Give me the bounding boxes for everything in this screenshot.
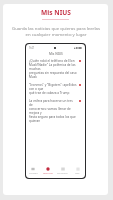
staticText: Portada <box>29 172 38 175</box>
staticText: Mis NIUS <box>43 172 53 175</box>
button[interactable]: Portada <box>26 164 40 178</box>
staticText: "Ironeros" y "Bigoters": apellidos con o… <box>29 83 77 95</box>
staticText: Más <box>75 172 80 175</box>
button[interactable]: ¿Quién robó el teléfono de Elon Musk?Nad… <box>26 57 85 81</box>
staticText: Mis NIUS <box>49 52 63 56</box>
button[interactable]: Secciones <box>55 164 70 178</box>
staticText: La esfera para hacerse un tres de conoce… <box>29 99 77 123</box>
button[interactable]: "Ironeros" y "Bigoters": apellidos con o… <box>26 81 85 97</box>
staticText: Guarda las noticias que quieras para lee… <box>12 25 100 37</box>
staticText: Mis NIUS <box>41 8 71 17</box>
button[interactable]: Más <box>70 164 85 178</box>
staticText: 9:41 <box>29 46 35 50</box>
button[interactable]: La esfera para hacerse un tres de conoce… <box>26 97 85 125</box>
staticText: ¿Quién robó el teléfono de Elon Musk?Nad… <box>29 59 77 79</box>
staticText: Secciones <box>57 172 68 175</box>
button[interactable]: Mis NIUS <box>40 164 55 178</box>
